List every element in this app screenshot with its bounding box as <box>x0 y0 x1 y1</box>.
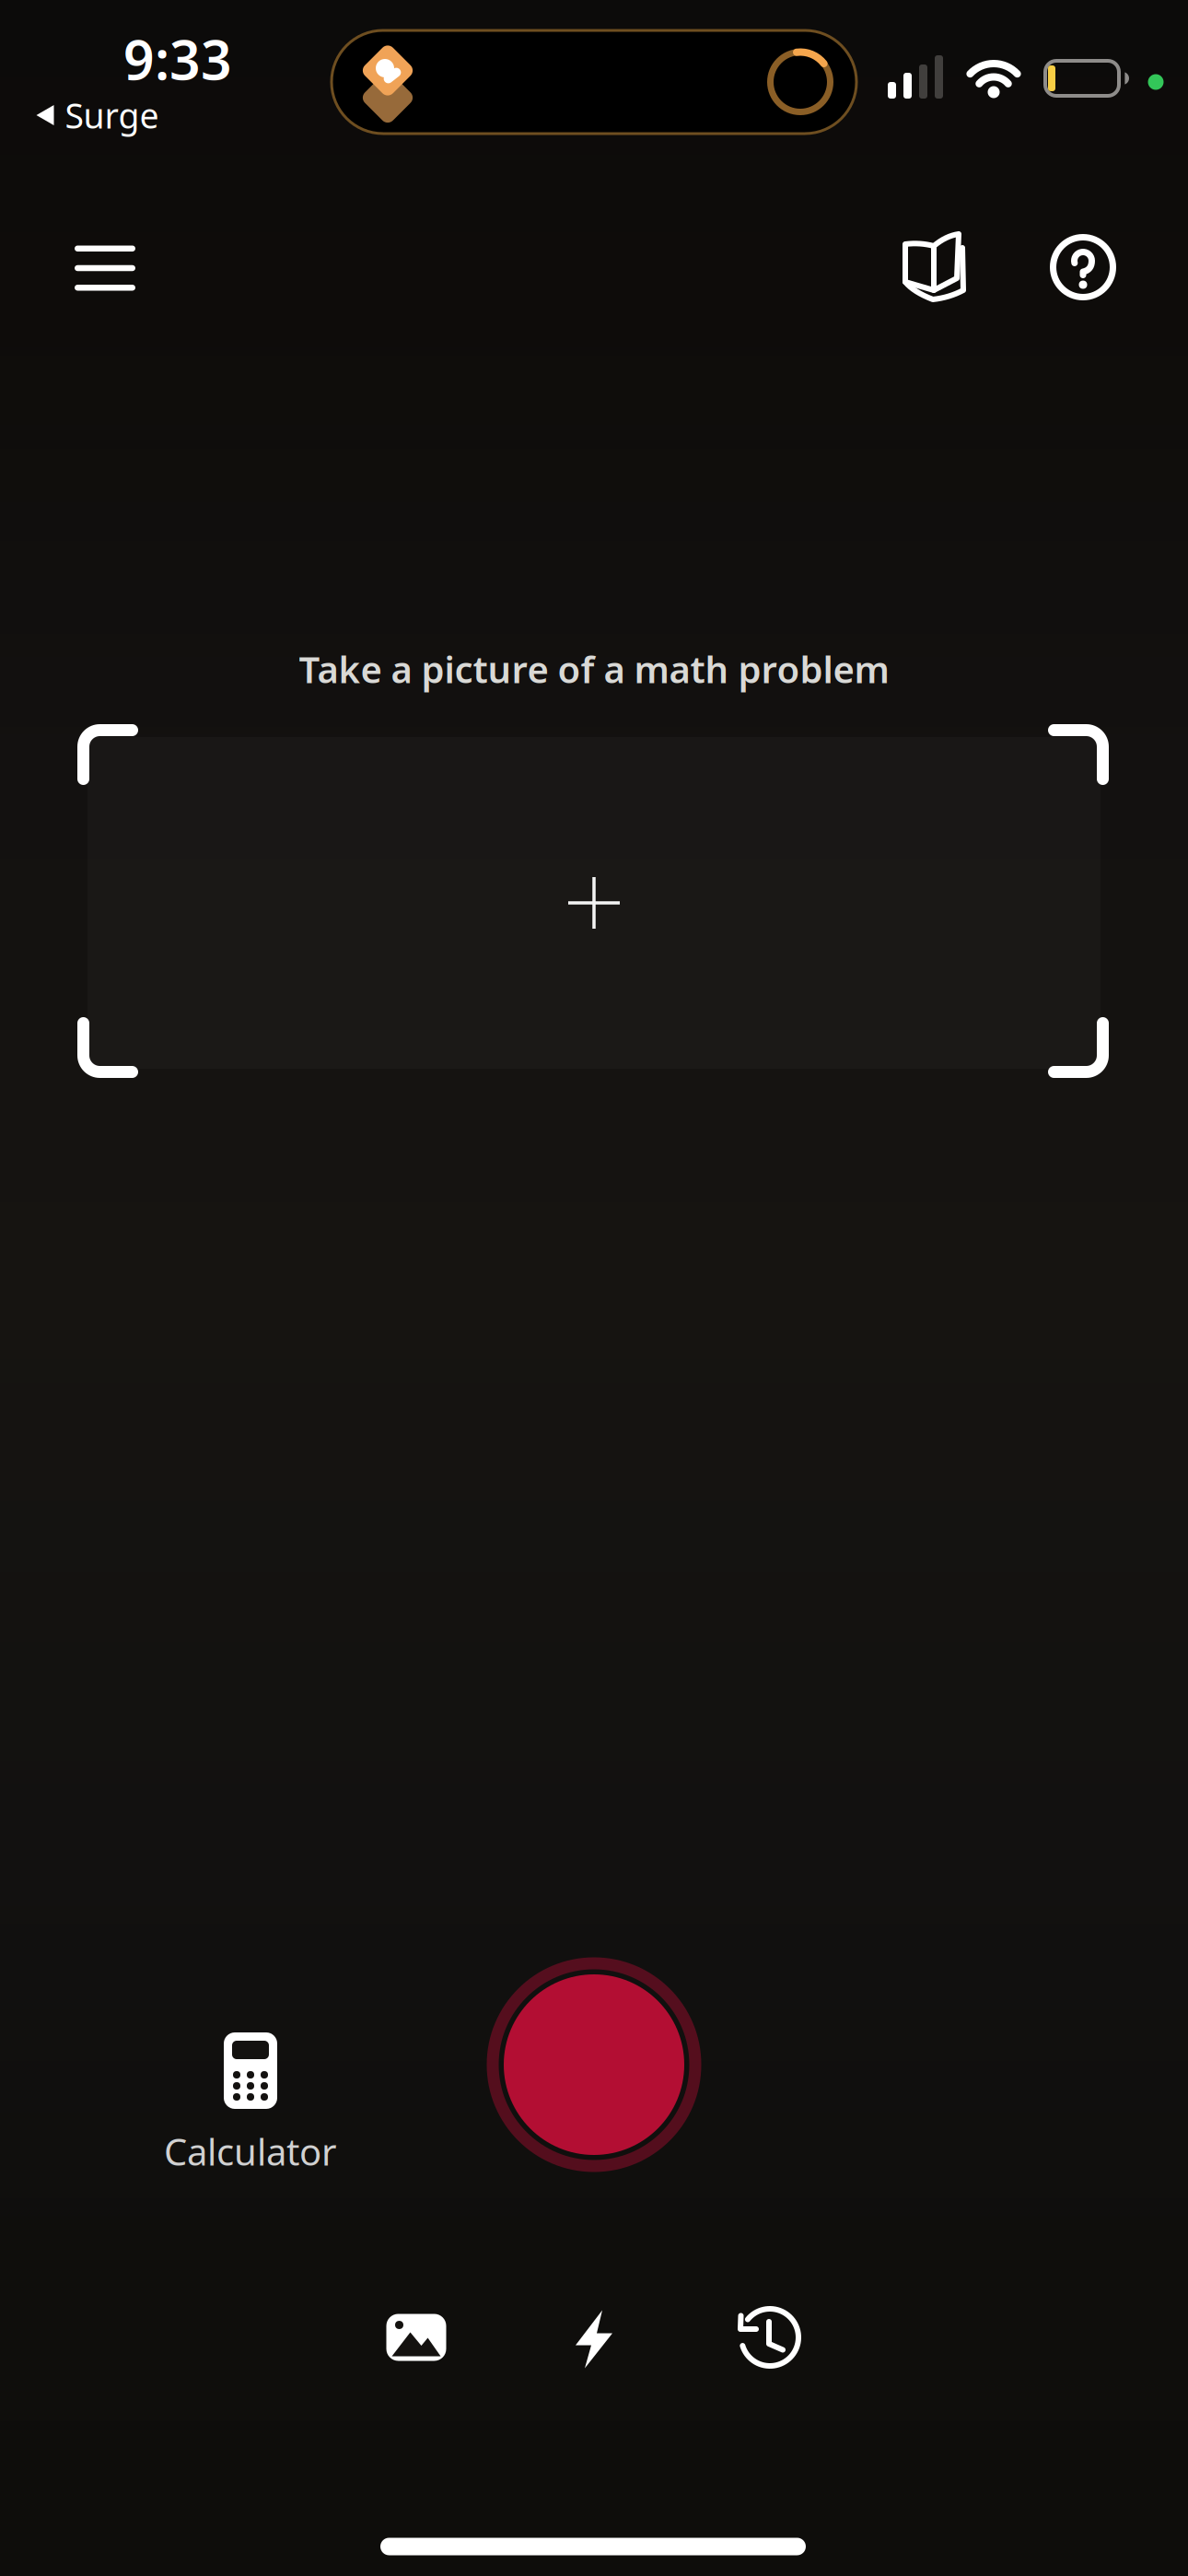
button[interactable]: Textbooks <box>900 229 968 309</box>
button[interactable]: Live Activity <box>332 30 856 134</box>
button[interactable]: Photo library <box>386 2314 446 2361</box>
button[interactable]: Menu <box>75 246 135 291</box>
button[interactable]: Surge <box>36 92 159 138</box>
staticText: Take a picture of a math problem <box>299 644 889 693</box>
button[interactable]: Calculator <box>163 2029 338 2172</box>
button[interactable]: Take photo <box>483 1954 705 2175</box>
staticText: Calculator <box>164 2127 337 2176</box>
staticText: 9:33 <box>123 23 232 95</box>
button[interactable]: Help <box>1050 234 1116 300</box>
staticText: Surge <box>65 92 159 138</box>
button[interactable]: History <box>737 2304 803 2371</box>
button[interactable]: Flash <box>574 2309 614 2369</box>
